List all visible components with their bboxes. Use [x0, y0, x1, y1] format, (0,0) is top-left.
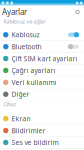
staticText: Çift SIM kart ayarları: [11, 54, 77, 63]
staticText: Veri kullanımı: [11, 78, 56, 87]
button[interactable]: Diğer: [0, 88, 84, 100]
staticText: Bluetooth: [11, 42, 41, 51]
staticText: Kablosuz ve ağlar: [3, 18, 45, 25]
button[interactable]: Bluetooth: [0, 41, 84, 53]
button[interactable]: Ekran: [0, 113, 84, 125]
button[interactable]: Çağrı ayarları: [0, 65, 84, 77]
button[interactable]: Ses ve bildirim: [0, 137, 84, 149]
button[interactable]: Search: [73, 6, 82, 18]
button[interactable]: Veri kullanımı: [0, 77, 84, 88]
staticText: Kablosuz: [11, 30, 39, 39]
staticText: Cihaz: [3, 101, 16, 108]
staticText: Bildirimler: [11, 126, 45, 135]
staticText: Diğer: [11, 90, 29, 99]
staticText: Ayarlar: [2, 7, 27, 17]
button[interactable]: Kablosuz: [0, 29, 84, 41]
staticText: Ekran: [11, 114, 30, 123]
staticText: Çağrı ayarları: [11, 66, 55, 75]
button[interactable]: Bildirimler: [0, 125, 84, 137]
staticText: Ses ve bildirim: [11, 138, 58, 147]
button[interactable]: Çift SIM kart ayarları: [0, 53, 84, 65]
